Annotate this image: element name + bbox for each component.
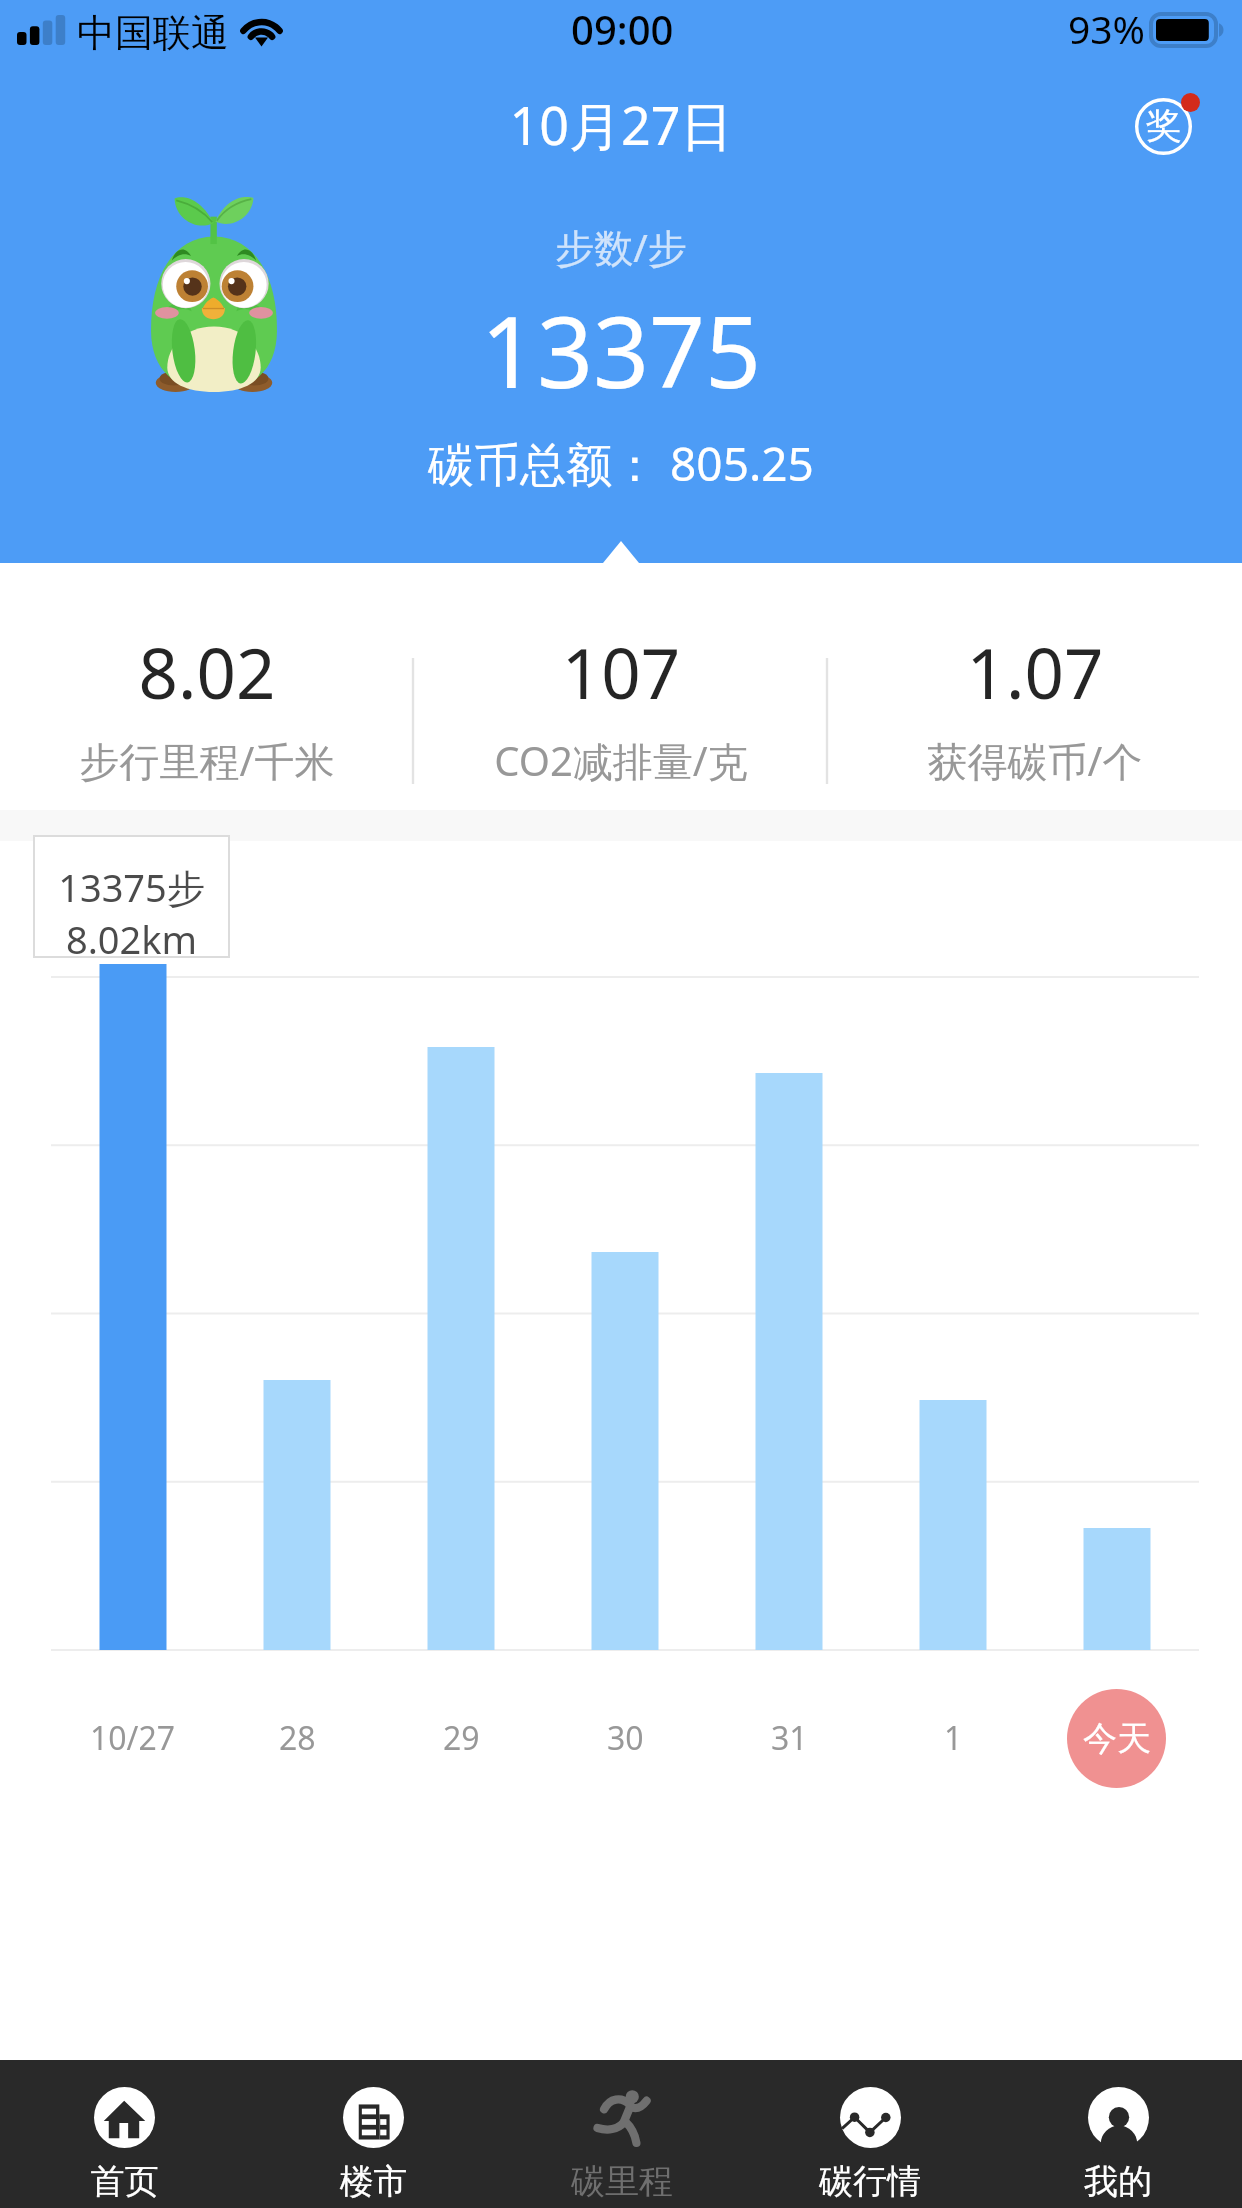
button[interactable]: 30 bbox=[543, 1706, 707, 1770]
staticText: 楼市 bbox=[249, 2160, 498, 2203]
staticText: 今天 bbox=[1083, 1717, 1151, 1760]
staticText: 步数/步 bbox=[0, 220, 1242, 273]
staticText: 8.02km bbox=[34, 913, 229, 965]
button[interactable]: 28 bbox=[215, 1706, 379, 1770]
staticText: 碳币总额： 805.25 bbox=[0, 432, 1242, 495]
button[interactable]: 楼市 bbox=[249, 2060, 498, 2208]
staticText: 1 bbox=[944, 1716, 963, 1760]
staticText: 10/27 bbox=[90, 1716, 176, 1760]
button[interactable]: 首页 bbox=[0, 2060, 249, 2208]
staticText: 30 bbox=[607, 1716, 644, 1760]
button[interactable]: 奖励 bbox=[1135, 98, 1192, 155]
staticText: 碳里程 bbox=[498, 2160, 746, 2203]
staticText: 奖 bbox=[1146, 103, 1182, 148]
button[interactable]: 碳里程 bbox=[498, 2060, 746, 2208]
button[interactable]: 碳行情 bbox=[746, 2060, 994, 2208]
button[interactable]: 8.02 bbox=[0, 563, 414, 810]
staticText: 步行里程/千米 bbox=[0, 733, 414, 788]
button[interactable]: 29 bbox=[379, 1706, 543, 1770]
button[interactable]: 1.07 bbox=[828, 563, 1242, 810]
staticText: 8.02 bbox=[0, 625, 414, 719]
staticText: 我的 bbox=[994, 2160, 1242, 2203]
button[interactable]: 我的 bbox=[994, 2060, 1242, 2208]
staticText: 10月27日 bbox=[0, 89, 1242, 160]
staticText: 31 bbox=[771, 1716, 808, 1760]
staticText: 中国联通 bbox=[77, 9, 229, 57]
button[interactable]: 10/27 bbox=[51, 1706, 215, 1770]
staticText: 首页 bbox=[0, 2160, 249, 2203]
button[interactable]: 今天 bbox=[1067, 1689, 1166, 1788]
staticText: 碳行情 bbox=[746, 2160, 994, 2203]
button[interactable]: 107 bbox=[414, 563, 828, 810]
staticText: 13375 bbox=[0, 283, 1242, 416]
staticText: 13375步 bbox=[34, 861, 229, 913]
button[interactable]: 1 bbox=[871, 1706, 1035, 1770]
staticText: 29 bbox=[443, 1716, 480, 1760]
staticText: 09:00 bbox=[571, 2, 674, 56]
button[interactable]: 31 bbox=[707, 1706, 871, 1770]
staticText: CO2减排量/克 bbox=[414, 733, 828, 788]
staticText: 93% bbox=[1068, 2, 1146, 55]
staticText: 107 bbox=[414, 625, 828, 719]
staticText: 获得碳币/个 bbox=[828, 733, 1242, 788]
staticText: 1.07 bbox=[828, 625, 1242, 719]
staticText: 28 bbox=[279, 1716, 316, 1760]
